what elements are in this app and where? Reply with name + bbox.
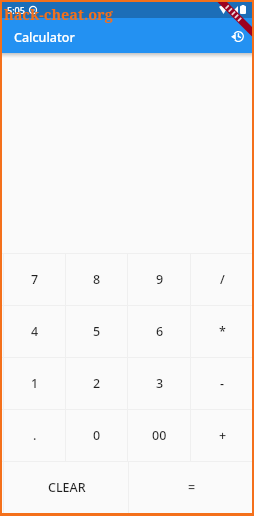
button[interactable]: 2	[64, 357, 126, 409]
button[interactable]: 00	[126, 409, 189, 461]
staticText: 5	[93, 323, 101, 340]
staticText: 5:05	[7, 4, 25, 16]
staticText: 4	[31, 323, 39, 340]
staticText: 7	[31, 271, 39, 288]
staticText: 0	[93, 427, 101, 444]
staticText: +	[219, 427, 227, 444]
button[interactable]: 9	[126, 253, 189, 305]
button[interactable]: +	[189, 409, 252, 461]
staticText: 2	[93, 375, 101, 392]
button[interactable]: /	[189, 253, 252, 305]
button[interactable]: *	[189, 305, 252, 357]
staticText: 8	[93, 271, 101, 288]
button[interactable]: 4	[2, 305, 64, 357]
staticText: /	[220, 271, 225, 288]
button[interactable]: 7	[2, 253, 64, 305]
staticText: =	[188, 479, 196, 496]
button[interactable]: History	[225, 24, 249, 48]
button[interactable]: 8	[64, 253, 126, 305]
staticText: 3	[156, 375, 164, 392]
staticText: 1	[31, 375, 39, 392]
button[interactable]: 3	[126, 357, 189, 409]
button[interactable]: =	[127, 461, 252, 513]
staticText: 00	[152, 427, 167, 444]
button[interactable]: 1	[2, 357, 64, 409]
button[interactable]: 6	[126, 305, 189, 357]
staticText: *	[219, 323, 226, 340]
staticText: CLEAR	[48, 479, 86, 496]
staticText: -	[220, 375, 225, 392]
staticText: 6	[156, 323, 164, 340]
button[interactable]: 5	[64, 305, 126, 357]
staticText: hack-cheat.org	[4, 4, 113, 24]
button[interactable]: 0	[64, 409, 126, 461]
button[interactable]: -	[189, 357, 252, 409]
staticText: 9	[156, 271, 164, 288]
staticText: .	[33, 427, 37, 444]
staticText: Calculator	[14, 29, 75, 46]
button[interactable]: CLEAR	[2, 461, 127, 513]
button[interactable]: .	[2, 409, 64, 461]
